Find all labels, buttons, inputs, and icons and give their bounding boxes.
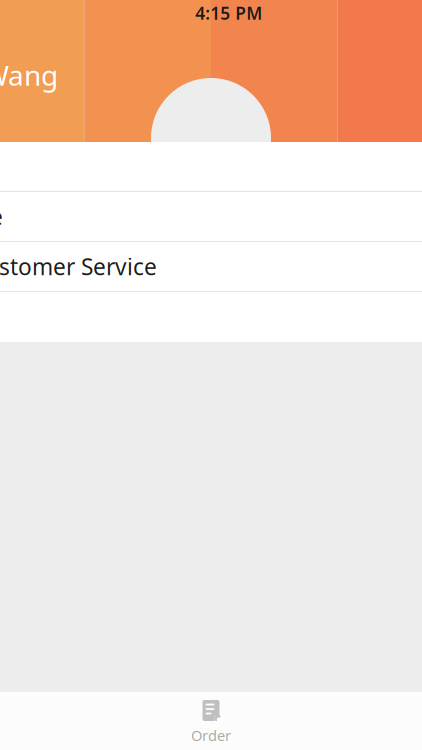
staticText: Contact Customer Service bbox=[0, 251, 157, 281]
button[interactable]: about us bbox=[0, 142, 422, 192]
button[interactable]: Order bbox=[84, 691, 338, 750]
button[interactable]: Contact Customer Service bbox=[0, 242, 422, 292]
staticText: go to score bbox=[0, 201, 3, 231]
button[interactable]: go to score bbox=[0, 192, 422, 242]
staticText: Order bbox=[191, 725, 231, 745]
staticText: Mr Wang bbox=[0, 56, 58, 94]
staticText: 4:15 PM bbox=[195, 1, 262, 24]
